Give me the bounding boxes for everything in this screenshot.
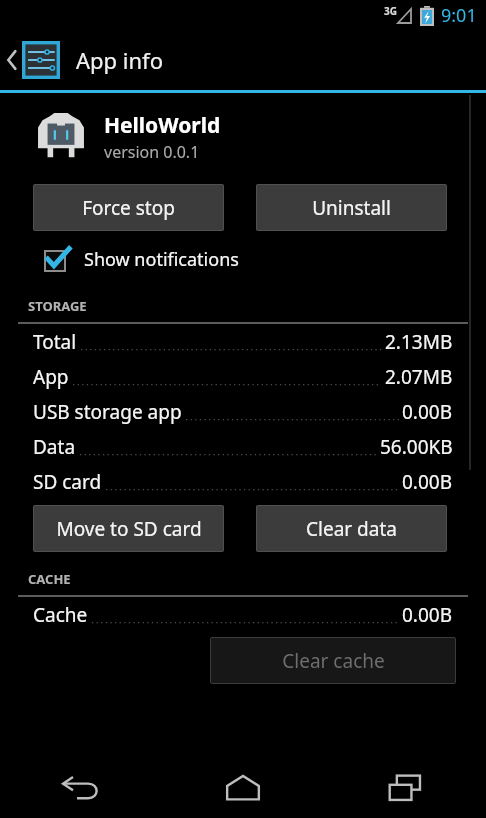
staticText: 2.07MB xyxy=(385,364,453,390)
button[interactable]: Recent apps xyxy=(324,756,486,818)
staticText: Uninstall xyxy=(312,195,391,221)
staticText: 56.00KB xyxy=(380,434,453,460)
button[interactable]: Force stop xyxy=(33,184,224,231)
staticText: Clear data xyxy=(306,516,397,542)
staticText: version 0.0.1 xyxy=(104,141,200,163)
staticText: Clear cache xyxy=(282,648,385,674)
staticText: CACHE xyxy=(28,570,71,588)
button[interactable]: Total xyxy=(0,324,486,359)
staticText: Show notifications xyxy=(84,247,239,272)
staticText: 9:01 xyxy=(441,3,477,28)
staticText: Total xyxy=(33,329,77,355)
staticText: HelloWorld xyxy=(104,111,221,140)
staticText: 0.00B xyxy=(402,602,453,628)
button[interactable]: Back xyxy=(0,756,162,818)
button[interactable]: USB storage app xyxy=(0,394,486,429)
button[interactable]: Move to SD card xyxy=(33,505,224,552)
button[interactable]: SD card xyxy=(0,464,486,499)
staticText: 0.00B xyxy=(402,399,453,425)
staticText: 0.00B xyxy=(402,469,453,495)
button[interactable]: Clear cache xyxy=(210,637,456,684)
staticText: SD card xyxy=(33,469,102,495)
staticText: Data xyxy=(33,434,76,460)
button[interactable]: Show notifications xyxy=(42,243,241,275)
staticText: USB storage app xyxy=(33,399,182,425)
staticText: 3G xyxy=(384,4,397,18)
button[interactable]: Uninstall xyxy=(256,184,447,231)
button[interactable]: Data xyxy=(0,429,486,464)
button[interactable]: App xyxy=(0,359,486,394)
staticText: App info xyxy=(76,45,163,75)
staticText: Cache xyxy=(33,602,88,628)
staticText: App xyxy=(33,364,69,390)
staticText: 2.13MB xyxy=(385,329,453,355)
staticText: STORAGE xyxy=(28,297,87,315)
staticText: Force stop xyxy=(82,195,175,221)
button[interactable]: Navigate up xyxy=(0,35,66,85)
button[interactable]: Home xyxy=(162,756,324,818)
button[interactable]: Cache xyxy=(0,597,486,632)
button[interactable]: Clear data xyxy=(256,505,447,552)
staticText: Move to SD card xyxy=(56,516,202,542)
